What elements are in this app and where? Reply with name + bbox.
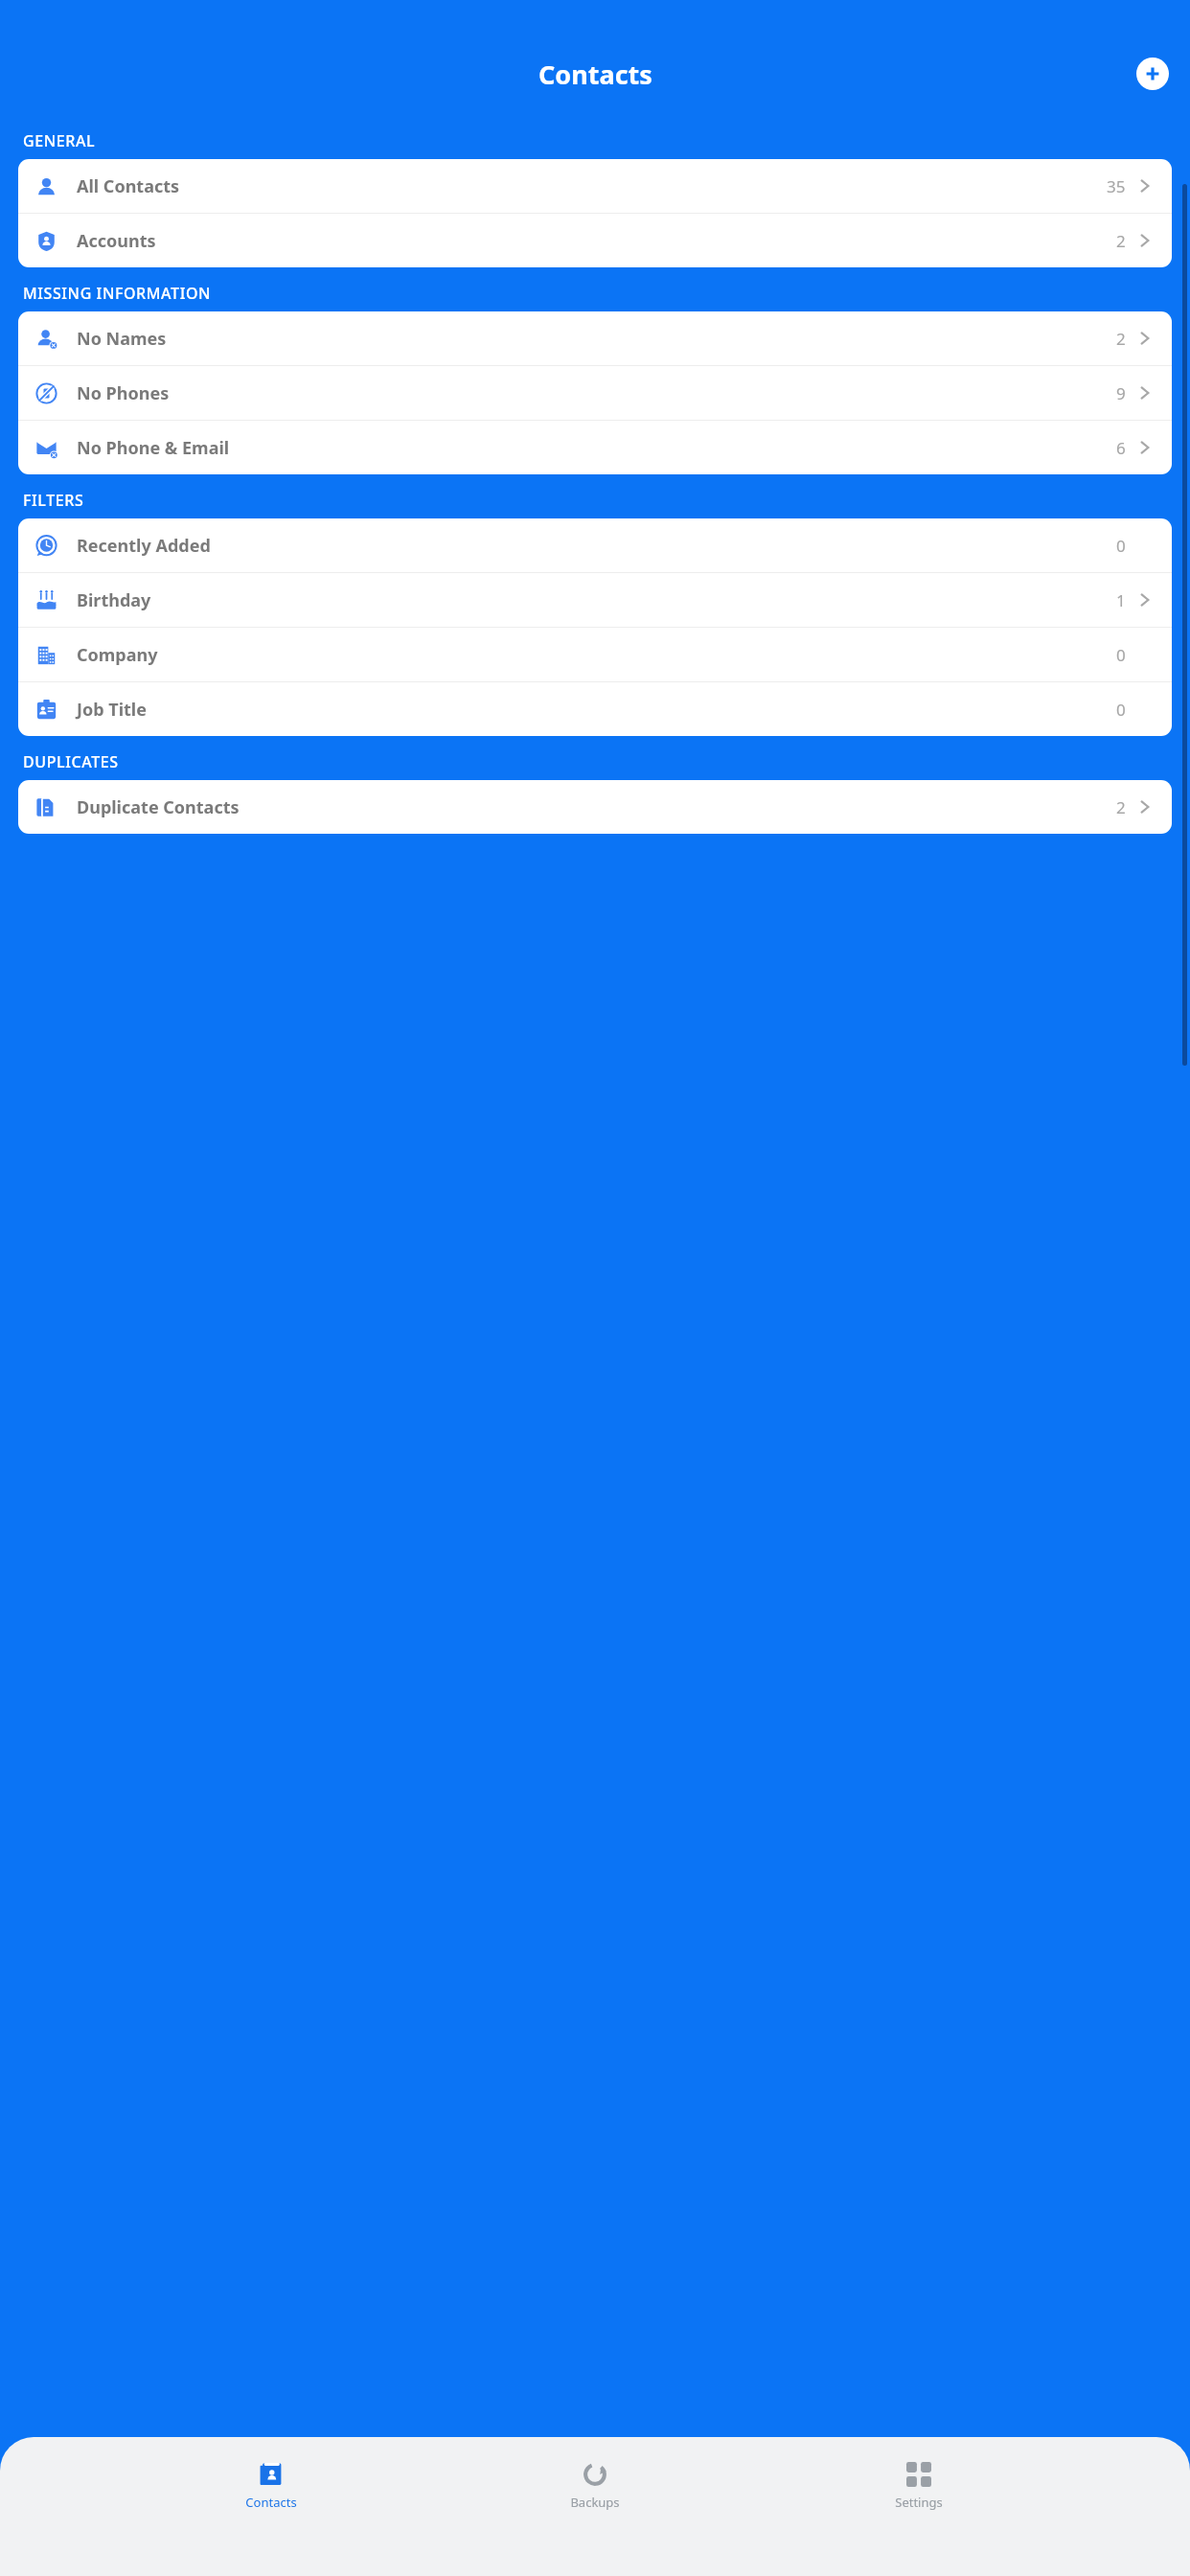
staticText: Settings [895, 2494, 943, 2511]
button[interactable]: Settings [866, 2458, 972, 2515]
button[interactable]: Add contact [1136, 57, 1169, 90]
button[interactable]: Job Title [18, 682, 1172, 736]
staticText: Contacts [245, 2494, 297, 2511]
staticText: Company [77, 643, 158, 667]
staticText: Birthday [77, 588, 151, 612]
staticText: 2 [1116, 328, 1126, 350]
staticText: MISSING INFORMATION [23, 283, 212, 304]
staticText: GENERAL [23, 130, 96, 151]
staticText: 35 [1107, 175, 1126, 197]
staticText: No Names [77, 327, 167, 351]
button[interactable]: Recently Added [18, 518, 1172, 572]
staticText: 2 [1116, 230, 1126, 252]
staticText: 2 [1116, 796, 1126, 818]
button[interactable]: Contacts [218, 2458, 324, 2515]
staticText: Accounts [77, 229, 156, 253]
staticText: 1 [1116, 589, 1126, 611]
staticText: Job Title [77, 698, 147, 722]
staticText: 6 [1116, 437, 1126, 459]
button[interactable]: No Phones [18, 366, 1172, 420]
staticText: Contacts [538, 57, 652, 92]
button[interactable]: No Phone & Email [18, 421, 1172, 474]
button[interactable]: Birthday [18, 573, 1172, 627]
staticText: No Phones [77, 381, 170, 405]
staticText: Backups [570, 2494, 620, 2511]
staticText: All Contacts [77, 174, 180, 198]
button[interactable]: Backups [542, 2458, 648, 2515]
staticText: 9 [1116, 382, 1126, 404]
staticText: DUPLICATES [23, 751, 119, 772]
staticText: 0 [1116, 535, 1126, 557]
staticText: Recently Added [77, 534, 211, 558]
staticText: No Phone & Email [77, 436, 230, 460]
button[interactable]: Duplicate Contacts [18, 780, 1172, 834]
staticText: FILTERS [23, 490, 84, 511]
staticText: 0 [1116, 644, 1126, 666]
button[interactable]: All Contacts [18, 159, 1172, 213]
button[interactable]: No Names [18, 311, 1172, 365]
staticText: Duplicate Contacts [77, 795, 240, 819]
button[interactable]: Company [18, 628, 1172, 681]
button[interactable]: Accounts [18, 214, 1172, 267]
staticText: 0 [1116, 699, 1126, 721]
